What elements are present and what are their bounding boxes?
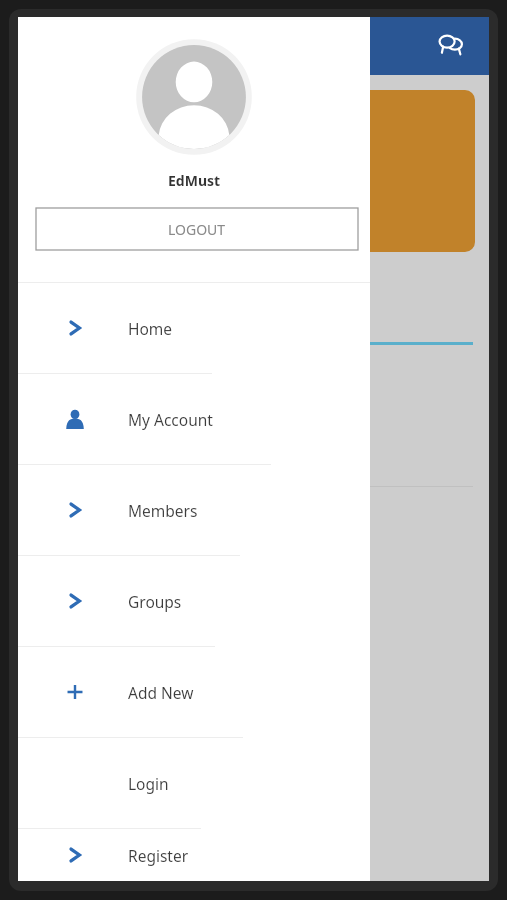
staticText: Your friends have [52,180,184,200]
button[interactable]: Add New [18,647,370,737]
button[interactable]: Login [18,738,370,828]
staticText: Login [128,773,169,794]
button[interactable]: Profile photo [134,37,254,157]
button[interactable]: Home [18,283,370,373]
button[interactable]: Groups [18,556,370,646]
button[interactable]: Hey [34,90,475,252]
button[interactable]: LOGOUT [36,208,358,250]
staticText: Add New [128,682,194,703]
button[interactable]: Register [18,829,370,881]
button[interactable]: My Account [18,374,370,464]
staticText: Members [128,500,198,521]
button[interactable]: Members [18,465,370,555]
staticText: My Account [128,409,213,430]
staticText: Groups [128,591,182,612]
button[interactable]: Write a comment ... [34,359,364,474]
staticText: EdMust [168,171,221,190]
staticText: LOGOUT [168,220,226,239]
staticText: Register [128,845,189,866]
button[interactable]: Messages [431,26,471,66]
staticText: Home [128,318,173,339]
